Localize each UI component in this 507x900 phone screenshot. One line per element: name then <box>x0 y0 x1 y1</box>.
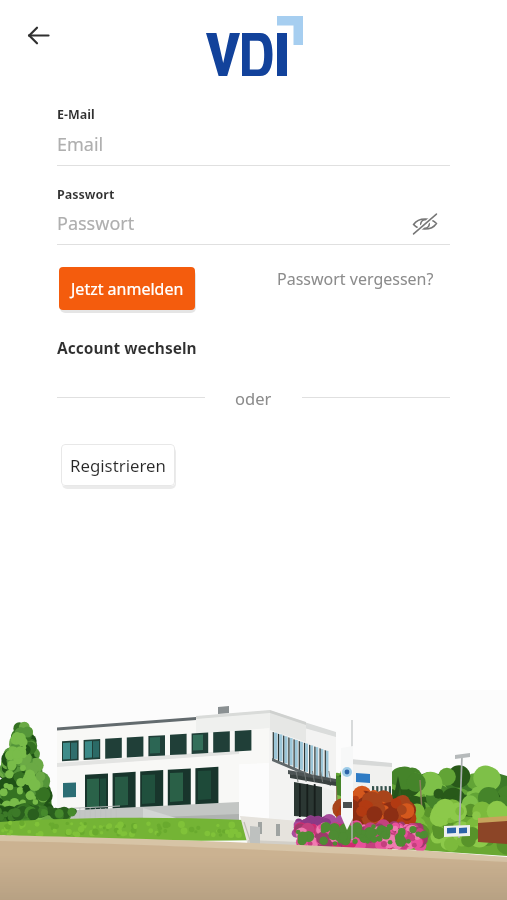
button[interactable]: Account wechseln <box>57 337 197 358</box>
staticText: oder <box>235 387 272 409</box>
button[interactable]: Registrieren <box>61 444 175 486</box>
staticText: E-Mail <box>57 106 95 123</box>
staticText: Passwort <box>57 186 115 203</box>
button[interactable]: Back <box>14 11 62 59</box>
button[interactable]: Show password <box>407 206 443 242</box>
staticText: Account wechseln <box>57 337 197 358</box>
staticText: Email <box>57 132 104 157</box>
staticText: Registrieren <box>70 454 166 477</box>
button[interactable]: Passwort vergessen? <box>273 265 438 293</box>
staticText: Jetzt anmelden <box>71 278 184 300</box>
button[interactable]: Jetzt anmelden <box>59 267 195 310</box>
staticText: Passwort <box>57 211 135 236</box>
staticText: Passwort vergessen? <box>277 268 434 290</box>
